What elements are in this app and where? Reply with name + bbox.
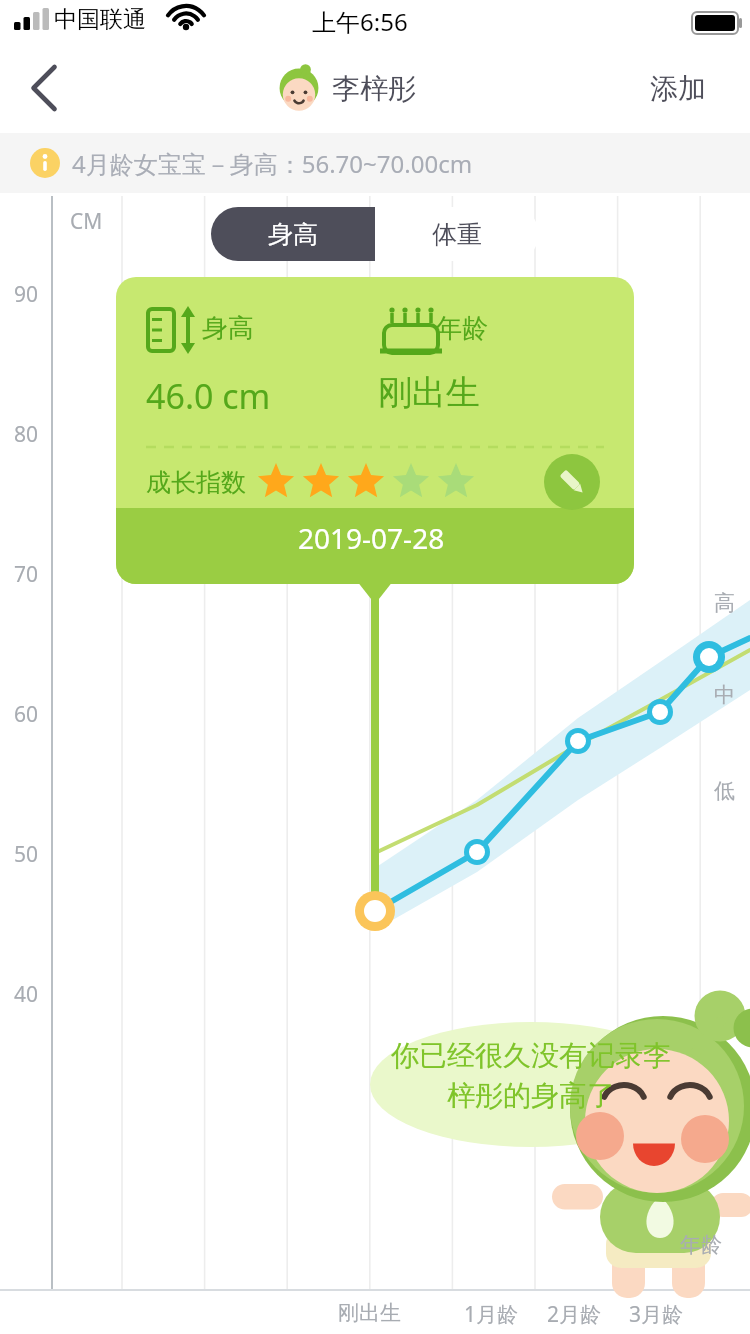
staticText: 你已经很久没有记录李 梓彤的身高了 <box>383 1038 679 1113</box>
staticText: 低 <box>714 778 735 804</box>
staticText: 成长指数 <box>146 467 246 498</box>
staticText: 中 <box>714 682 735 708</box>
button[interactable]: Edit <box>544 427 604 487</box>
staticText: 2月龄 <box>547 1300 602 1329</box>
staticText: 刚出生 <box>378 371 480 414</box>
staticText: 80 <box>14 420 39 449</box>
staticText: 身高 <box>202 312 254 345</box>
button[interactable]: Back <box>4 48 80 128</box>
staticText: 年龄 <box>436 312 488 345</box>
staticText: 60 <box>14 700 39 729</box>
staticText: 46.0 cm <box>146 373 271 419</box>
staticText: 90 <box>14 280 39 309</box>
staticText: 70 <box>14 560 39 589</box>
staticText: 中国联通 <box>54 5 146 34</box>
button[interactable]: 身高 <box>211 207 375 261</box>
staticText: 李梓彤 <box>332 71 416 106</box>
button[interactable]: 身高 <box>116 277 634 584</box>
staticText: 1月龄 <box>464 1300 519 1329</box>
staticText: 添加 <box>650 71 706 106</box>
staticText: 50 <box>14 840 39 869</box>
staticText: 40 <box>14 980 39 1009</box>
staticText: 身高 <box>268 219 318 250</box>
button[interactable]: 添加 <box>630 58 726 118</box>
staticText: 3月龄 <box>629 1300 684 1329</box>
staticText: 2019-07-28 <box>298 519 445 557</box>
button[interactable]: 李梓彤 <box>272 58 416 118</box>
button[interactable]: 体重 <box>375 207 539 261</box>
staticText: 年龄 <box>680 1232 722 1258</box>
staticText: 体重 <box>432 219 482 250</box>
staticText: 4月龄女宝宝－身高：56.70~70.00cm <box>72 147 473 180</box>
staticText: 刚出生 <box>338 1300 401 1326</box>
staticText: 高 <box>714 590 735 616</box>
staticText: 上午6:56 <box>312 5 408 38</box>
staticText: CM <box>70 207 103 236</box>
